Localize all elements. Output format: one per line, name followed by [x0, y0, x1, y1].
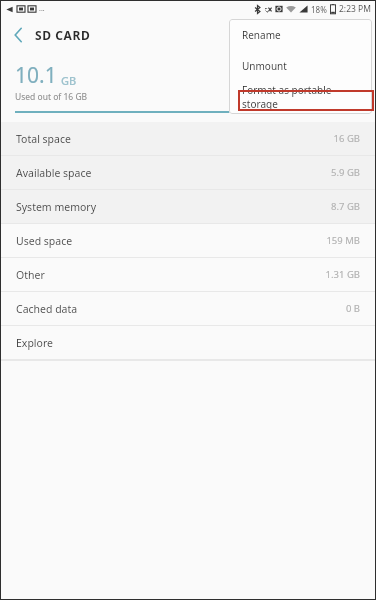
- staticText: 159 MB: [326, 234, 360, 247]
- button[interactable]: Back: [1, 18, 35, 52]
- staticText: Format as portable storage: [242, 83, 366, 111]
- staticText: 5.9 GB: [331, 166, 360, 179]
- staticText: SD CARD: [35, 27, 91, 43]
- staticText: 8.7 GB: [331, 200, 360, 213]
- button[interactable]: Total space: [1, 122, 375, 155]
- staticText: Other: [16, 268, 45, 282]
- staticText: ...: [39, 4, 45, 14]
- button[interactable]: System memory: [1, 190, 375, 223]
- staticText: System memory: [16, 200, 97, 214]
- staticText: Available space: [16, 166, 92, 180]
- staticText: Unmount: [242, 59, 287, 73]
- staticText: Used out of 16 GB: [15, 91, 88, 103]
- button[interactable]: Cached data: [1, 292, 375, 325]
- button[interactable]: Explore: [1, 326, 375, 359]
- staticText: 2:23 PM: [339, 3, 371, 15]
- staticText: Total space: [16, 132, 71, 146]
- button[interactable]: Format as portable storage: [229, 81, 372, 112]
- button[interactable]: Rename: [229, 19, 372, 50]
- button[interactable]: Used space: [1, 224, 375, 257]
- staticText: GB: [61, 73, 77, 88]
- staticText: 16 GB: [333, 132, 360, 145]
- staticText: 10.1: [15, 61, 57, 90]
- staticText: 1.31 GB: [325, 268, 360, 281]
- staticText: Cached data: [16, 302, 78, 316]
- button[interactable]: Unmount: [229, 50, 372, 81]
- staticText: Explore: [16, 336, 53, 350]
- staticText: 0 B: [345, 302, 360, 315]
- staticText: Used space: [16, 234, 73, 248]
- staticText: Rename: [242, 28, 281, 42]
- staticText: 18%: [311, 4, 327, 15]
- button[interactable]: Available space: [1, 156, 375, 189]
- button[interactable]: Other: [1, 258, 375, 291]
